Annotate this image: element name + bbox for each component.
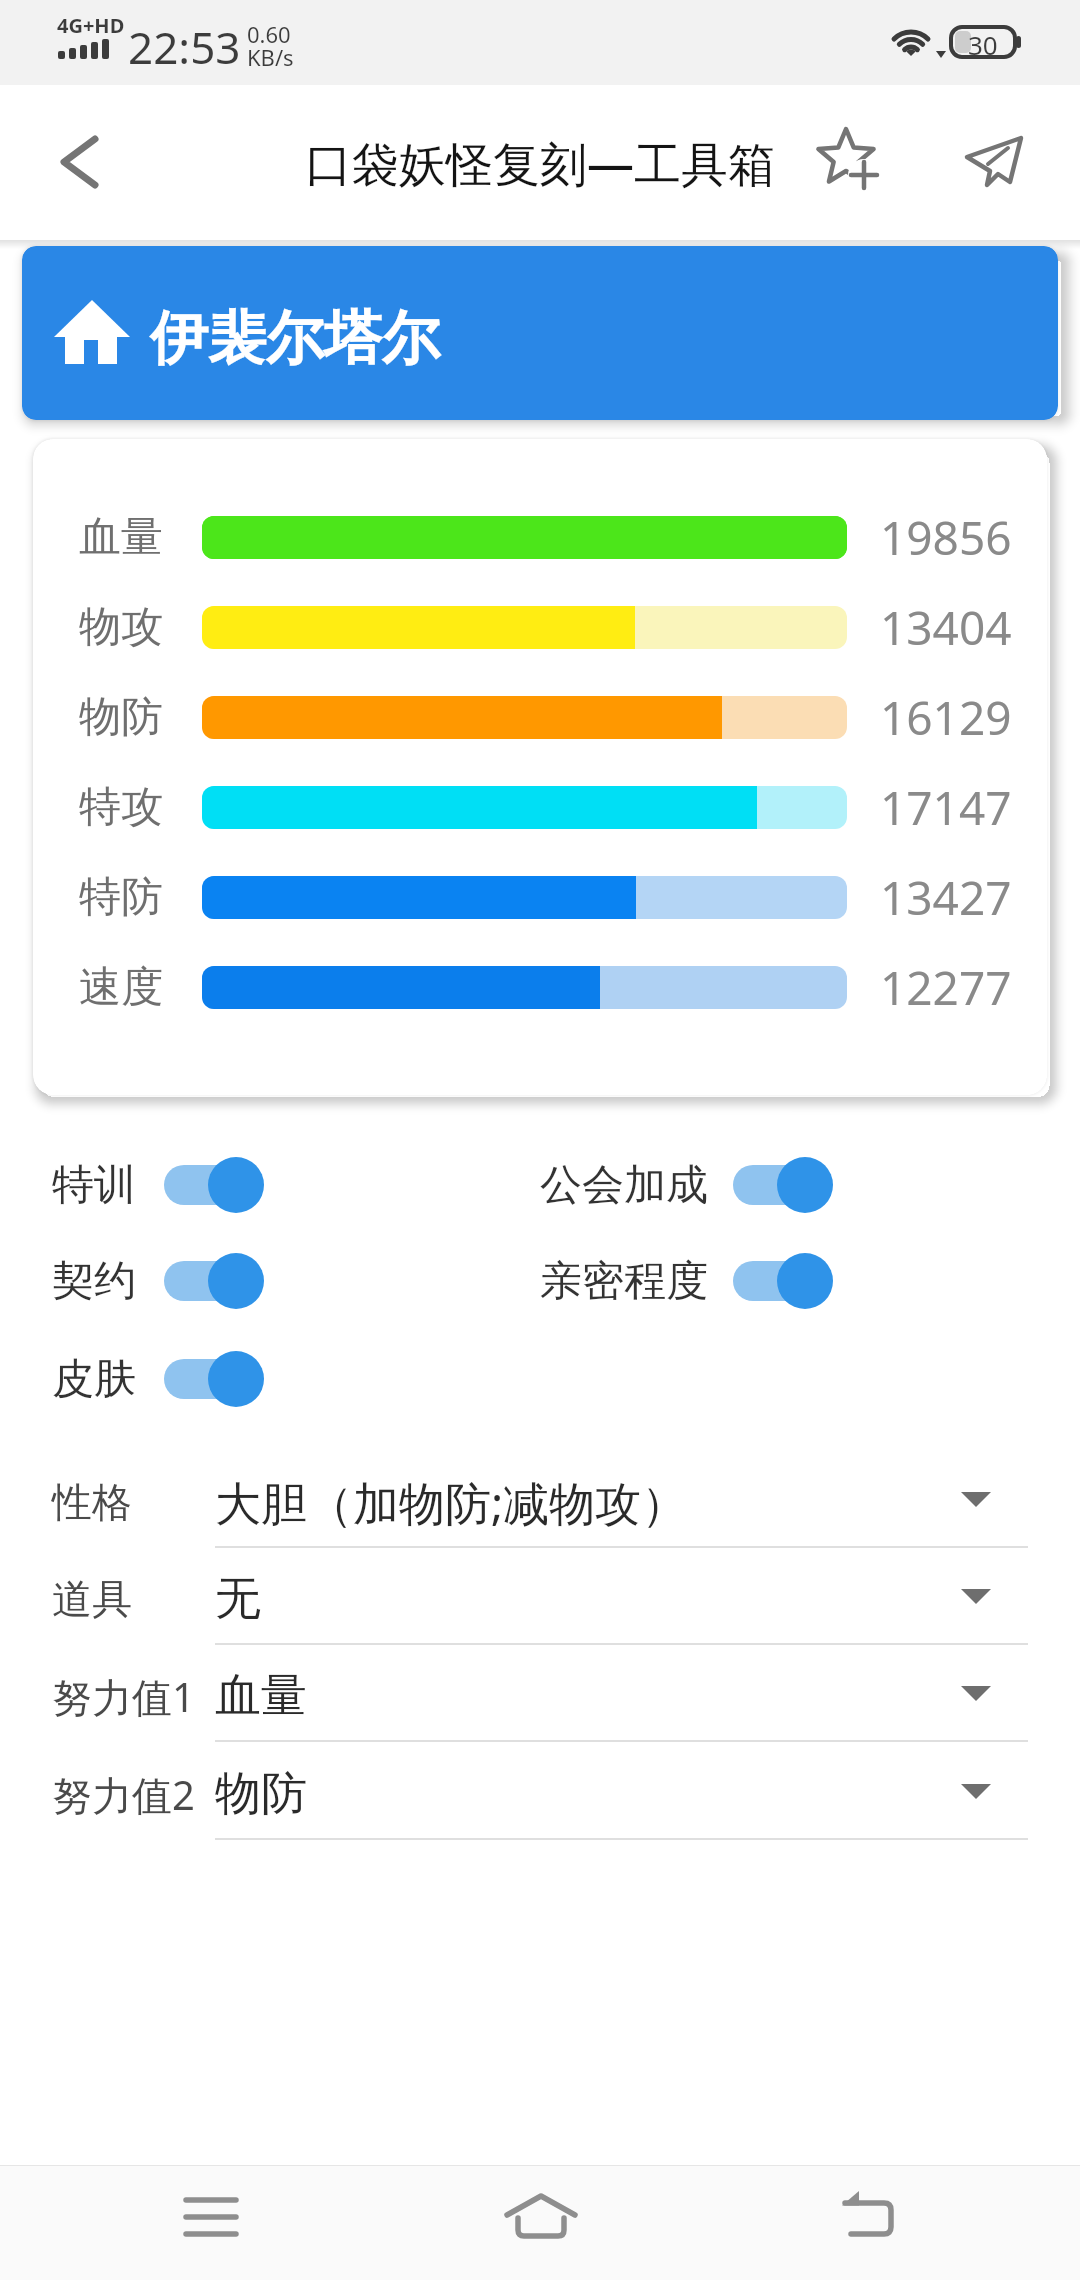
button[interactable]	[40, 115, 120, 210]
staticText: 13404	[880, 596, 1012, 659]
staticText: 努力值2	[52, 1767, 195, 1822]
staticText: 努力值1	[52, 1669, 195, 1724]
staticText: 12277	[880, 956, 1012, 1019]
staticText: 血量	[215, 1667, 307, 1725]
staticText: 4G+HD	[57, 12, 125, 39]
button[interactable]: 伊裴尔塔尔	[22, 246, 1058, 420]
staticText: 物攻	[79, 601, 163, 654]
button[interactable]	[950, 120, 1040, 205]
staticText: 30	[968, 27, 998, 62]
staticText: 公会加成	[540, 1159, 708, 1212]
staticText: 物防	[215, 1765, 307, 1823]
button[interactable]	[164, 1157, 264, 1213]
staticText: 16129	[880, 686, 1012, 749]
button[interactable]	[805, 120, 895, 205]
staticText: 伊裴尔塔尔	[150, 302, 440, 375]
button[interactable]	[733, 1157, 833, 1213]
staticText: 22:53	[128, 17, 241, 77]
button[interactable]: 道具	[0, 1550, 1080, 1648]
staticText: 道具	[52, 1574, 132, 1624]
button[interactable]	[160, 2180, 265, 2270]
button[interactable]: 性格	[0, 1453, 1080, 1551]
staticText: 口袋妖怪复刻—工具箱	[305, 131, 775, 195]
staticText: 大胆（加物防;减物攻）	[215, 1471, 688, 1534]
button[interactable]	[164, 1253, 264, 1309]
staticText: 无	[215, 1570, 261, 1628]
button[interactable]	[818, 2180, 923, 2270]
button[interactable]	[164, 1351, 264, 1407]
staticText: 契约	[52, 1255, 136, 1308]
staticText: 特攻	[79, 781, 163, 834]
staticText: KB/s	[247, 42, 294, 72]
staticText: 血量	[79, 511, 163, 564]
staticText: 17147	[880, 776, 1012, 839]
staticText: 13427	[880, 866, 1012, 929]
staticText: 特训	[52, 1159, 136, 1212]
staticText: 19856	[880, 506, 1012, 569]
staticText: 皮肤	[52, 1353, 136, 1406]
staticText: 性格	[52, 1477, 132, 1527]
staticText: 特防	[79, 871, 163, 924]
staticText: 速度	[79, 961, 163, 1014]
button[interactable]	[488, 2180, 593, 2270]
button[interactable]: 努力值2	[0, 1745, 1080, 1843]
staticText: 物防	[79, 691, 163, 744]
button[interactable]	[733, 1253, 833, 1309]
button[interactable]: 努力值1	[0, 1647, 1080, 1745]
staticText: 亲密程度	[540, 1255, 708, 1308]
staticText: 0.60	[247, 19, 291, 49]
